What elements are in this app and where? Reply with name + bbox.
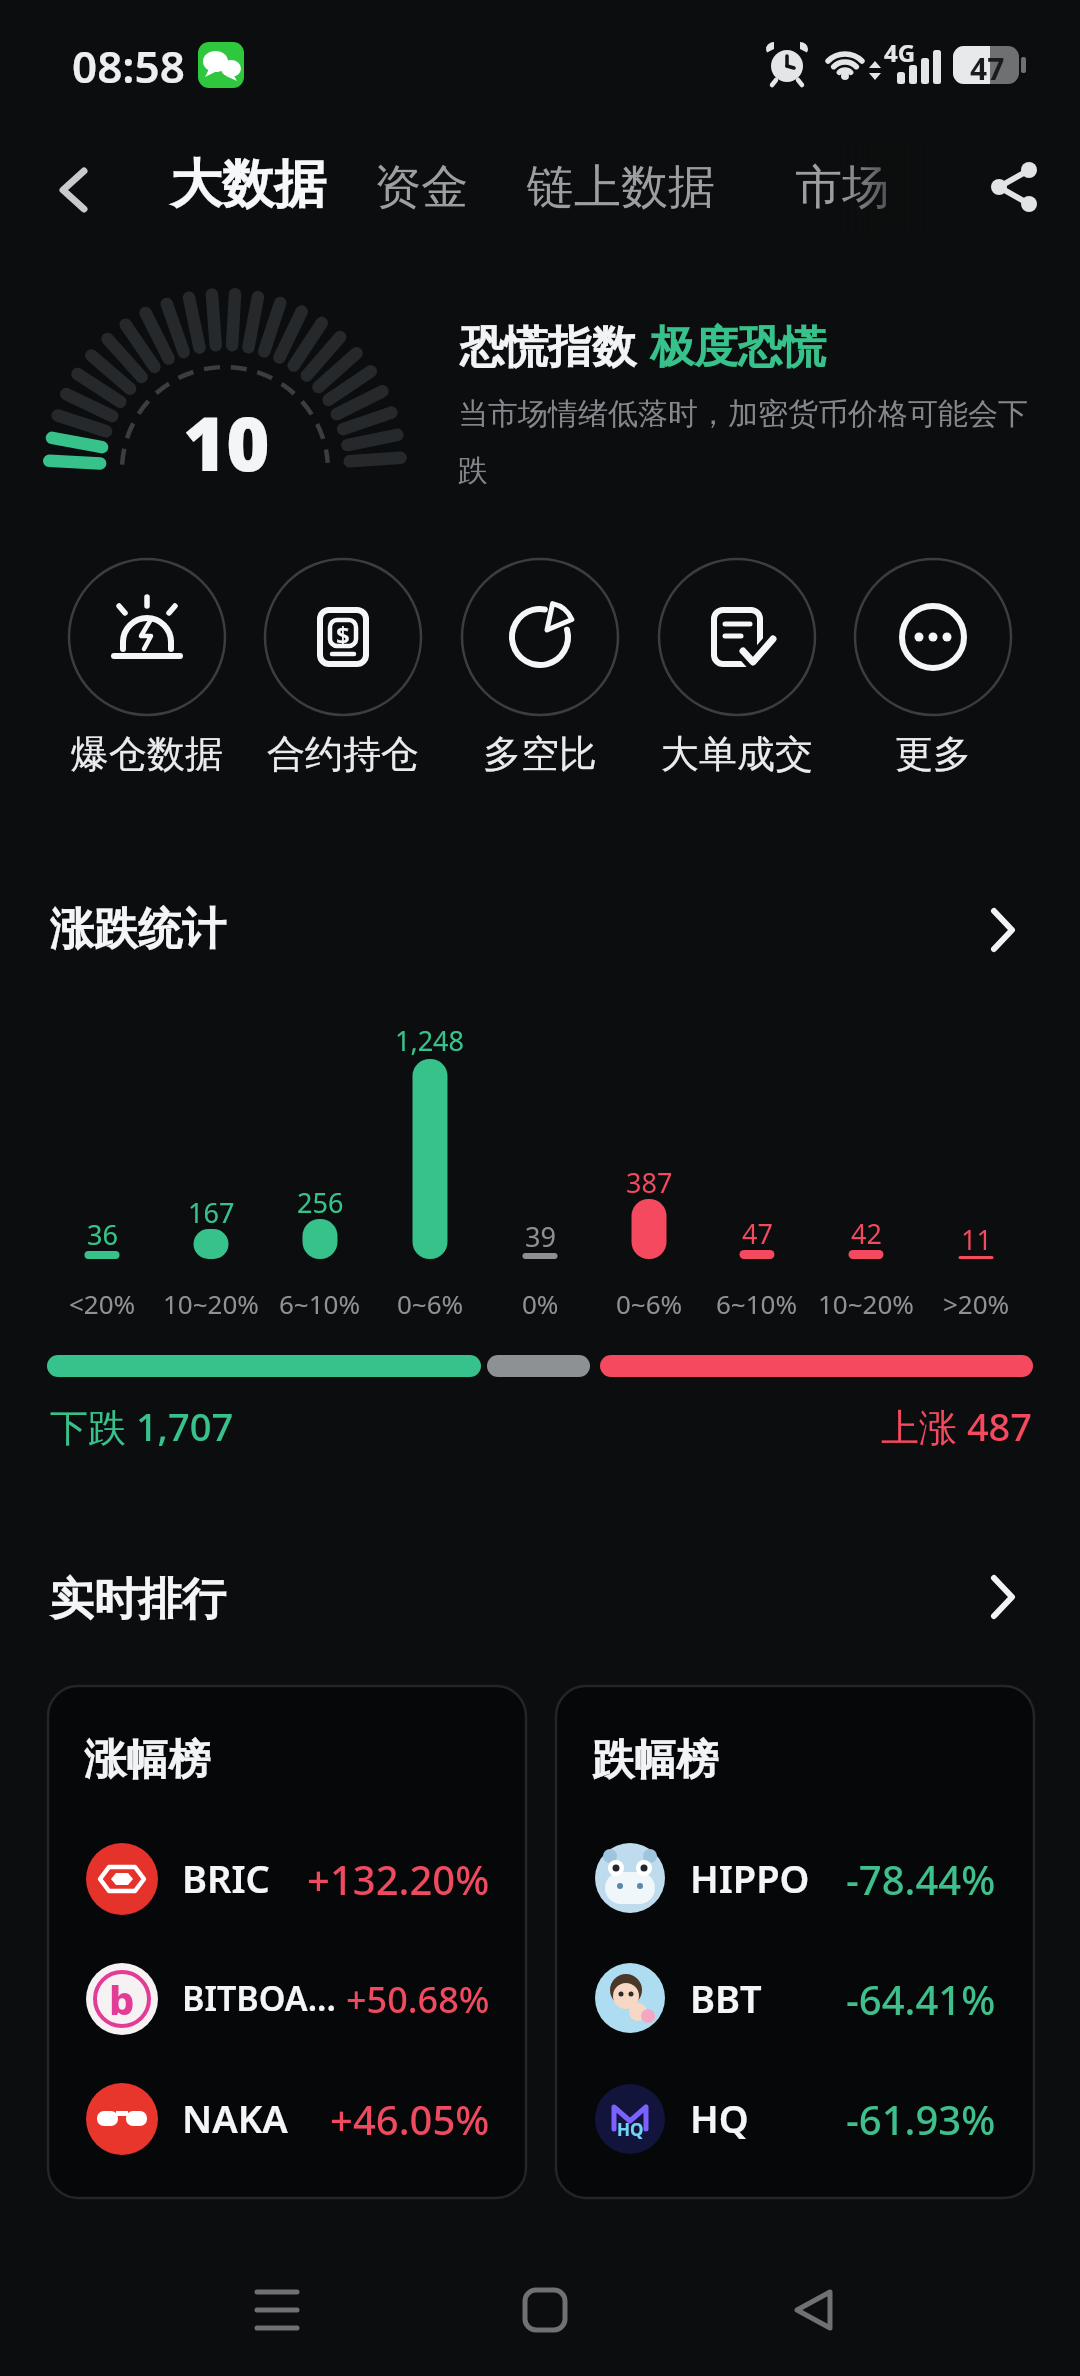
staticText: 大数据 <box>170 152 326 218</box>
staticText: 涨幅榜 <box>84 1734 210 1787</box>
staticText: 167 <box>188 1194 235 1231</box>
button[interactable] <box>70 1838 510 1920</box>
staticText: 6~10% <box>279 1286 361 1321</box>
staticText: 跌幅榜 <box>592 1734 718 1787</box>
staticText: b <box>109 1972 135 2026</box>
button[interactable] <box>265 559 421 779</box>
staticText: >20% <box>943 1286 1010 1321</box>
button[interactable] <box>580 1838 1020 1920</box>
staticText: 11 <box>961 1221 992 1258</box>
staticText: 387 <box>626 1164 673 1201</box>
staticText: 10 <box>183 392 270 493</box>
button[interactable] <box>220 2250 340 2370</box>
button[interactable] <box>70 2078 510 2160</box>
staticText: 下跌 1,707 <box>50 1400 234 1452</box>
button[interactable] <box>855 559 1011 779</box>
staticText: 47 <box>970 48 1005 89</box>
staticText: 跌 <box>458 452 488 490</box>
staticText: 更多 <box>895 730 971 778</box>
staticText: 合约持仓 <box>267 730 419 778</box>
staticText: HQ <box>690 2092 749 2144</box>
staticText: 0% <box>522 1286 559 1321</box>
button[interactable] <box>69 559 225 779</box>
button[interactable] <box>580 1958 1020 2040</box>
staticText: 多空比 <box>483 730 597 778</box>
button[interactable] <box>462 559 618 779</box>
staticText: 市场 <box>795 158 889 217</box>
staticText: 10~20% <box>818 1286 914 1321</box>
staticText: HQ <box>617 2118 644 2141</box>
staticText: -64.41% <box>846 1972 996 2026</box>
staticText: 上涨 487 <box>881 1400 1033 1452</box>
button[interactable] <box>755 2250 875 2370</box>
staticText: <20% <box>69 1286 136 1321</box>
staticText: 当市场情绪低落时，加密货币价格可能会下 <box>458 395 1028 433</box>
staticText: 0~6% <box>397 1286 464 1321</box>
staticText: NAKA <box>182 2092 288 2144</box>
staticText: HIPPO <box>690 1852 810 1904</box>
staticText: 36 <box>87 1216 118 1253</box>
staticText: BITBOA... <box>182 1975 336 2021</box>
staticText: 资金 <box>374 158 468 217</box>
button[interactable] <box>785 140 915 240</box>
staticText: +46.05% <box>330 2092 490 2146</box>
staticText: 39 <box>525 1218 556 1255</box>
staticText: 实时排行 <box>50 1572 226 1627</box>
button[interactable] <box>659 559 815 779</box>
button[interactable] <box>40 1560 1040 1636</box>
button[interactable] <box>580 2078 1020 2160</box>
staticText: 涨跌统计 <box>50 902 226 957</box>
button[interactable] <box>975 150 1045 230</box>
button[interactable] <box>40 890 1040 966</box>
staticText: -78.44% <box>846 1852 996 1906</box>
button[interactable] <box>365 140 495 240</box>
staticText: 6~10% <box>716 1286 798 1321</box>
staticText: 极度恐慌 <box>650 320 826 375</box>
staticText: 42 <box>851 1215 882 1252</box>
staticText: 0~6% <box>616 1286 683 1321</box>
staticText: +50.68% <box>346 1975 490 2024</box>
staticText: -61.93% <box>846 2092 996 2146</box>
staticText: 4G <box>884 36 916 69</box>
staticText: +132.20% <box>307 1852 490 1906</box>
staticText: 爆仓数据 <box>71 730 223 778</box>
button[interactable] <box>70 1958 510 2040</box>
staticText: $ <box>336 618 350 651</box>
staticText: 10~20% <box>163 1286 259 1321</box>
button[interactable] <box>520 140 755 240</box>
staticText: BBT <box>690 1972 762 2024</box>
staticText: 47 <box>742 1215 773 1252</box>
button[interactable] <box>485 2250 605 2370</box>
button[interactable] <box>160 140 340 240</box>
staticText: 256 <box>297 1184 344 1221</box>
staticText: 大单成交 <box>661 730 813 778</box>
staticText: BRIC <box>182 1852 270 1904</box>
staticText: 链上数据 <box>527 158 715 217</box>
button[interactable] <box>40 150 110 230</box>
staticText: 08:58 <box>72 36 185 96</box>
staticText: 恐慌指数 <box>460 320 636 375</box>
staticText: 1,248 <box>395 1022 465 1059</box>
